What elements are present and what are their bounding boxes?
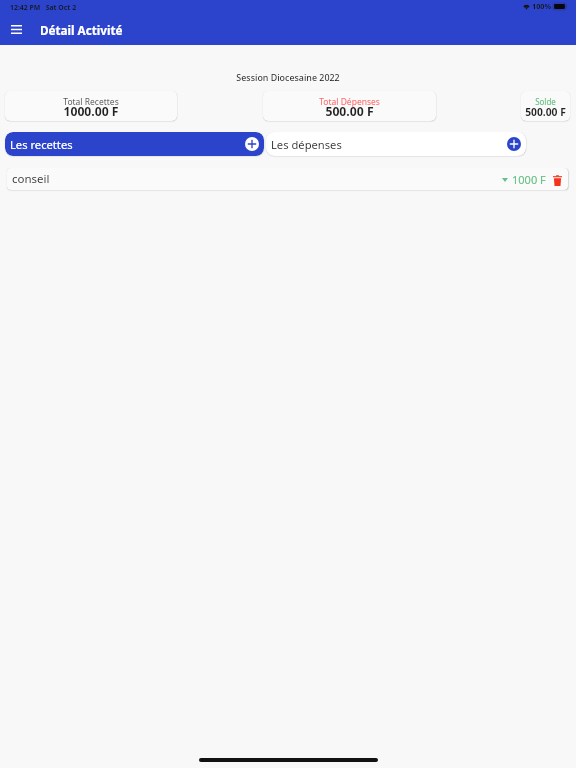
button[interactable]: Add xyxy=(245,137,259,151)
staticText: 500.00 F xyxy=(525,105,566,119)
staticText: 500.00 F xyxy=(325,103,374,116)
staticText: Les dépenses xyxy=(271,137,342,152)
button[interactable]: conseil xyxy=(7,168,568,190)
staticText: Session Diocesaine 2022 xyxy=(0,71,576,83)
button[interactable]: Add xyxy=(507,137,521,151)
staticText: Les recettes xyxy=(10,137,73,152)
staticText: conseil xyxy=(12,171,50,187)
button[interactable]: Total Recettes xyxy=(5,91,177,121)
staticText: Détail Activité xyxy=(40,22,123,38)
button[interactable]: Les recettes xyxy=(5,132,264,156)
button[interactable]: Les dépenses xyxy=(266,132,526,156)
button[interactable]: Delete xyxy=(551,174,563,186)
staticText: 1000.00 F xyxy=(63,103,119,116)
button[interactable]: Solde xyxy=(521,91,570,121)
staticText: Total Dépenses xyxy=(319,96,380,108)
staticText: 12:42 PM Sat Oct 2 xyxy=(10,3,77,12)
staticText: Solde xyxy=(535,96,556,107)
button[interactable]: Total Dépenses xyxy=(263,91,436,121)
staticText: 1000 F xyxy=(512,172,546,187)
staticText: 100% xyxy=(532,1,552,11)
button[interactable]: Menu xyxy=(0,14,32,45)
staticText: Total Recettes xyxy=(63,96,119,108)
